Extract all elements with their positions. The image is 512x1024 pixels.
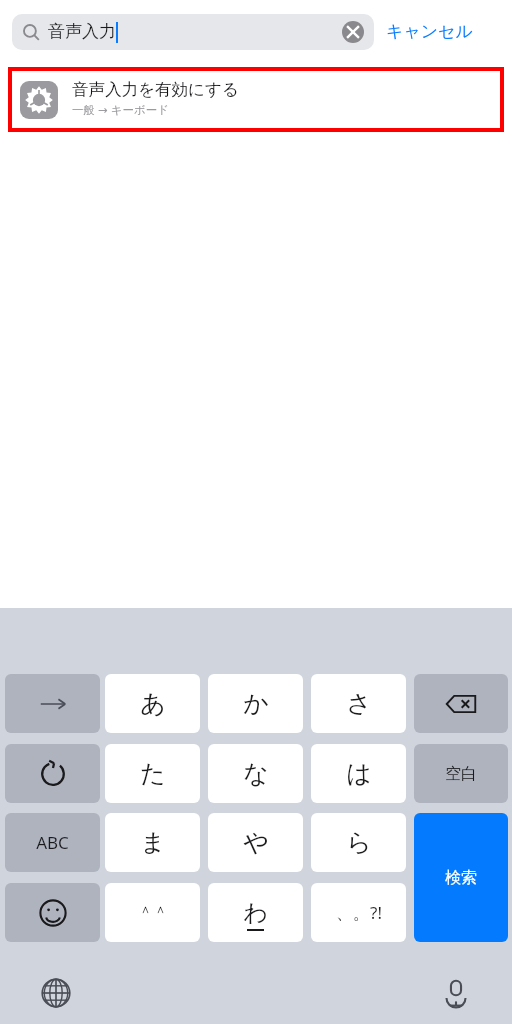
button[interactable]: Switch keyboard language [36, 973, 76, 1013]
button[interactable]: た [105, 744, 200, 803]
button[interactable]: Clear text [342, 21, 364, 43]
button[interactable]: わ [208, 883, 303, 942]
button[interactable]: 音声入力を有効にする [8, 67, 504, 132]
button[interactable]: 空白 [414, 744, 508, 803]
staticText: な [243, 758, 269, 789]
staticText: 検索 [445, 868, 477, 888]
staticText: ＾＾ [138, 903, 168, 922]
staticText: は [346, 758, 372, 789]
staticText: さ [346, 688, 372, 719]
staticText: ABC [36, 831, 69, 854]
button[interactable]: 音声入力 [12, 14, 374, 50]
button[interactable]: ま [105, 813, 200, 872]
button[interactable]: か [208, 674, 303, 733]
button[interactable]: ら [311, 813, 406, 872]
button[interactable]: Dictation [436, 973, 476, 1013]
staticText: 音声入力を有効にする [72, 79, 239, 100]
staticText: 一般 → キーボード [72, 102, 169, 118]
button[interactable]: な [208, 744, 303, 803]
button[interactable]: 検索 [414, 813, 508, 942]
button[interactable]: は [311, 744, 406, 803]
button[interactable]: 、。?! [311, 883, 406, 942]
staticText: や [243, 827, 269, 858]
button[interactable]: あ [105, 674, 200, 733]
staticText: た [140, 758, 166, 789]
staticText: か [243, 688, 269, 719]
button[interactable]: や [208, 813, 303, 872]
staticText: 空白 [445, 764, 477, 784]
staticText: あ [140, 688, 166, 719]
button[interactable] [5, 883, 100, 942]
button[interactable] [5, 744, 100, 803]
staticText: ま [140, 827, 166, 858]
staticText: 、。?! [336, 901, 382, 924]
staticText: ら [346, 827, 372, 858]
button[interactable]: ABC [5, 813, 100, 872]
button[interactable]: ＾＾ [105, 883, 200, 942]
button[interactable]: Delete [414, 674, 508, 733]
button[interactable]: さ [311, 674, 406, 733]
button[interactable] [5, 674, 100, 733]
button[interactable]: キャンセル [386, 21, 473, 42]
staticText: わ [243, 898, 268, 928]
staticText: 音声入力 [48, 21, 116, 42]
